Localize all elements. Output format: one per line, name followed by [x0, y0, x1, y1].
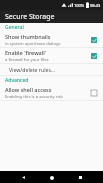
button[interactable]: Show thumbnails [0, 32, 103, 47]
button[interactable]: Checked [90, 52, 98, 60]
staticText: a firewall for your files [5, 57, 49, 63]
button[interactable]: Unchecked [90, 89, 98, 97]
button[interactable]: Back [18, 172, 29, 183]
staticText: 08:43 [90, 3, 101, 8]
staticText: Secure Storage [5, 12, 55, 22]
staticText: View/delete rules... [9, 66, 56, 73]
button[interactable]: Allow shell access [0, 85, 103, 100]
button[interactable]: View/delete rules... [0, 64, 103, 75]
staticText: in system open/save dialogs [5, 41, 61, 47]
staticText: Enabling this is a security risk [5, 94, 63, 100]
staticText: Enable 'firewall' [5, 49, 47, 56]
button[interactable]: Checked [90, 36, 98, 44]
staticText: Advanced [5, 77, 29, 84]
button[interactable]: Home [46, 172, 57, 183]
staticText: Allow shell access [5, 86, 52, 93]
staticText: Show thumbnails [5, 33, 51, 40]
staticText: 100% [74, 3, 85, 8]
button[interactable]: Enable 'firewall' [0, 48, 103, 63]
staticText: General [5, 24, 24, 31]
button[interactable]: Recent apps [75, 172, 86, 183]
